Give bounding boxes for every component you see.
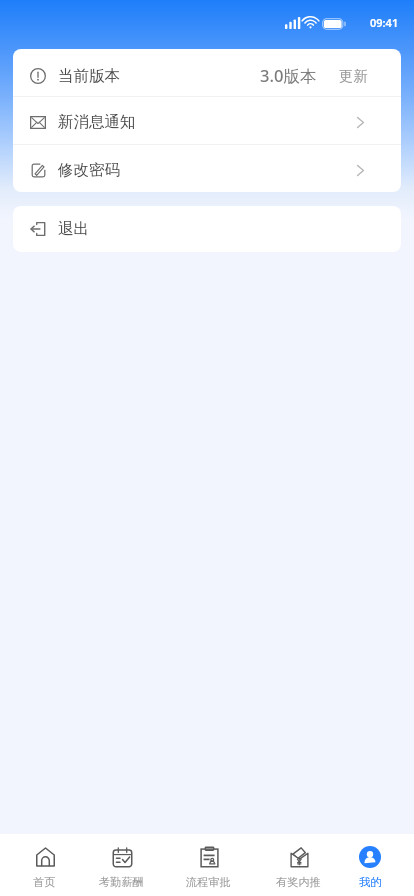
button[interactable]: 流程审批 [167,834,250,896]
button[interactable]: 我的 [329,834,411,896]
staticText: 有奖内推 [276,875,321,889]
staticText: 考勤薪酬 [99,875,144,889]
staticText: 更新 [339,67,368,85]
button[interactable]: 首页 [3,834,86,896]
staticText: 3.0版本 [260,64,317,87]
staticText: 首页 [33,875,56,889]
staticText: 当前版本 [58,66,120,86]
staticText: 流程审批 [186,875,231,889]
staticText: 退出 [58,219,89,239]
button[interactable]: 退出 [13,206,401,252]
staticText: 我的 [359,875,382,889]
button[interactable]: 有奖内推 [257,834,340,896]
button[interactable]: 新消息通知 [13,97,401,144]
button[interactable]: 当前版本 [13,49,401,96]
button[interactable]: 修改密码 [13,145,401,192]
staticText: 修改密码 [58,160,120,180]
button[interactable]: 考勤薪酬 [80,834,163,896]
staticText: 新消息通知 [58,112,136,132]
staticText: 09:41 [370,15,399,30]
